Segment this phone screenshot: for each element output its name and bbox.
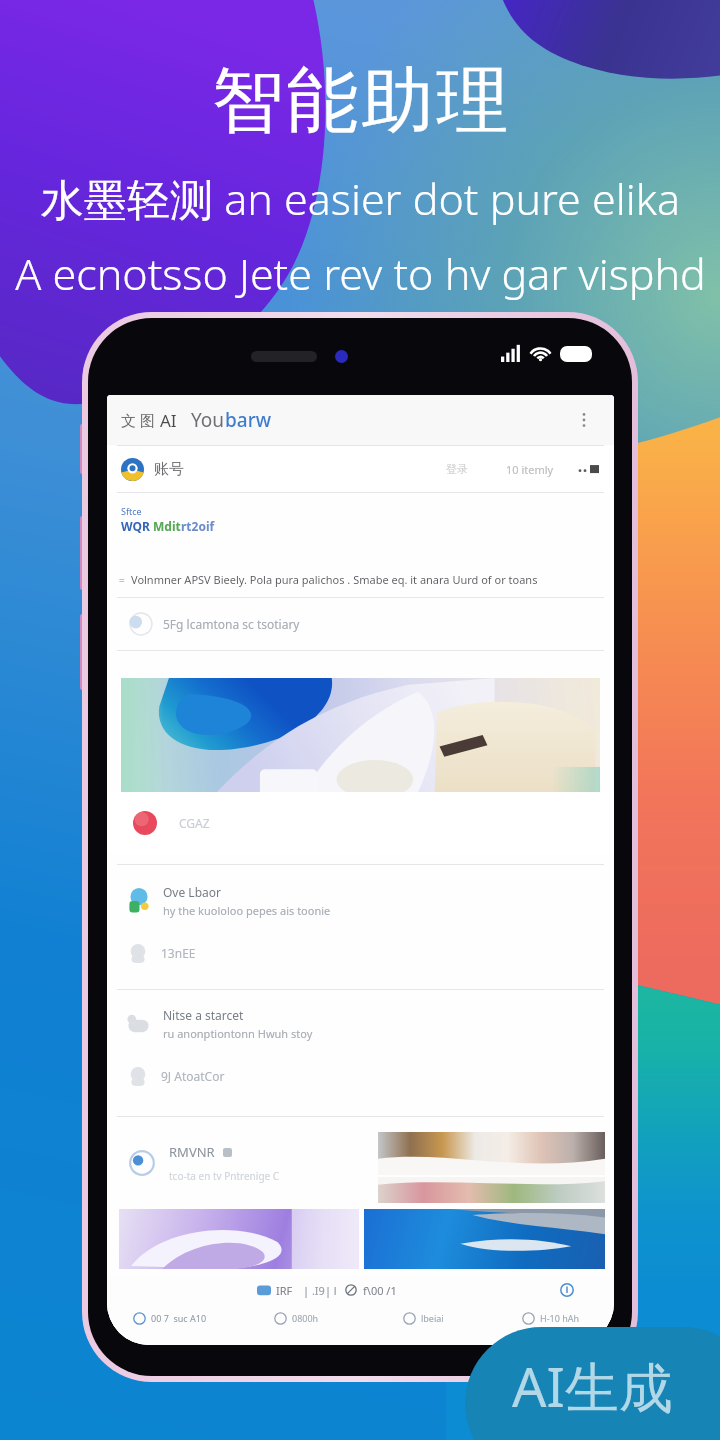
button[interactable]: 9J AtoatCor [107,1052,614,1100]
staticText: 登录 [446,462,468,476]
button[interactable]: H-10 hAh [487,1303,614,1333]
staticText: A ecnotsso Jete rev to hv gar visphd [15,244,706,303]
button[interactable]: 0800h [233,1303,360,1333]
button[interactable]: Card two [364,1209,605,1269]
staticText: You [191,407,225,433]
staticText: 13nEE [161,945,196,961]
staticText: ru anonptiontonn Hwuh stoy [163,1026,313,1041]
button[interactable]: 00 7 suc A10 [107,1303,233,1333]
staticText: Mdit [153,518,181,534]
button[interactable]: lbeiai [360,1303,487,1333]
staticText: 00 7 suc A10 [151,1312,207,1324]
button[interactable]: 账号 [107,446,614,492]
staticText: hy the kuololoo pepes ais toonie [163,903,331,918]
staticText: IRF [276,1283,293,1298]
button[interactable]: CGAZ [107,792,614,854]
button[interactable]: Nitse a starcet [107,996,614,1052]
button[interactable]: More options [570,406,598,434]
staticText: barw [225,407,272,433]
staticText: CGAZ [179,815,210,831]
button[interactable]: Photo gallery [378,1132,605,1209]
staticText: 水墨轻测 an easier dot pure elika [41,169,680,228]
staticText: H-10 hAh [540,1312,580,1324]
staticText: 智能助理 [210,56,510,147]
staticText: lbeiai [421,1312,444,1324]
staticText: 0800h [292,1312,319,1324]
button[interactable]: Card one [119,1209,359,1269]
staticText: | .I9| l [303,1283,337,1298]
button[interactable]: 5Fg lcamtona sc tsotiary [107,598,614,650]
staticText: tco-ta en tv Pntrenige C [169,1169,280,1183]
staticText: 9J AtoatCor [161,1068,225,1084]
staticText: AI生成 [512,1349,673,1423]
staticText: Volnmner APSV Bieely. Pola pura palichos… [131,572,538,587]
button[interactable]: Featured banner [121,678,600,792]
staticText: f\00 /1 [363,1283,397,1298]
staticText: 5Fg lcamtona sc tsotiary [163,616,300,632]
staticText: 文 图 [121,410,155,430]
button[interactable]: RMVNR [107,1117,378,1209]
staticText: = [119,573,125,587]
staticText: RMVNR [169,1143,215,1161]
staticText: rt2oif [181,518,215,534]
staticText: WQR [121,518,153,534]
staticText: 账号 [154,460,184,479]
button[interactable]: Ove Lbaor [107,873,614,929]
staticText: Sftce [121,505,142,517]
staticText: AI [160,409,177,432]
button[interactable]: 13nEE [107,929,614,977]
staticText: Ove Lbaor [163,884,221,900]
staticText: 10 itemly [506,462,554,477]
staticText: Nitse a starcet [163,1007,244,1023]
